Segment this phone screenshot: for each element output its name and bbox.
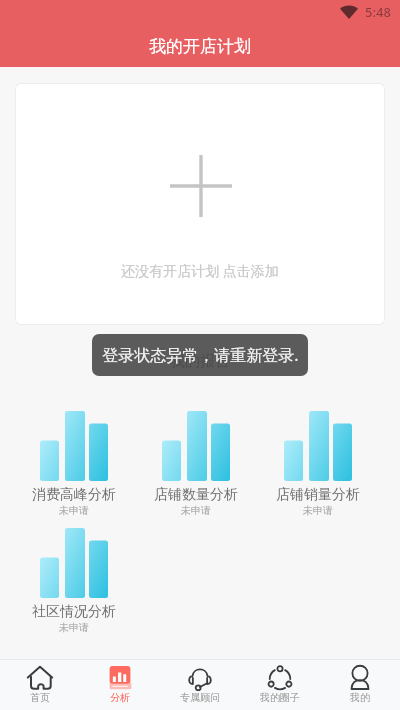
staticText: 我的开店计划 — [149, 36, 251, 57]
button[interactable]: 社区情况分析 — [13, 528, 135, 634]
staticText: 首页 — [30, 691, 50, 704]
staticText: 未申请 — [303, 504, 333, 517]
button[interactable]: 首页 — [0, 660, 80, 704]
button[interactable]: 店铺销量分析 — [257, 411, 379, 517]
staticText: 我的报告 — [0, 352, 400, 371]
staticText: 店铺销量分析 — [276, 486, 360, 504]
button[interactable]: 我的 — [320, 660, 400, 704]
button[interactable]: 分析 — [80, 660, 160, 704]
staticText: 5:48 — [365, 3, 391, 21]
button[interactable]: 我的圈子 — [240, 660, 320, 704]
staticText: 社区情况分析 — [32, 603, 116, 621]
button[interactable]: 专属顾问 — [160, 660, 240, 704]
staticText: 未申请 — [59, 504, 89, 517]
staticText: 消费高峰分析 — [32, 486, 116, 504]
staticText: 我的 — [350, 691, 370, 704]
staticText: 还没有开店计划 点击添加 — [16, 261, 384, 280]
button[interactable]: 店铺数量分析 — [135, 411, 257, 517]
staticText: 登录状态异常，请重新登录. — [102, 344, 299, 366]
staticText: 分析 — [110, 691, 130, 704]
staticText: 未申请 — [181, 504, 211, 517]
staticText: 店铺数量分析 — [154, 486, 238, 504]
button[interactable]: 消费高峰分析 — [13, 411, 135, 517]
staticText: 专属顾问 — [180, 691, 220, 704]
staticText: 未申请 — [59, 621, 89, 634]
button[interactable]: 添加开店计划 — [16, 84, 384, 324]
staticText: 我的圈子 — [260, 691, 300, 704]
